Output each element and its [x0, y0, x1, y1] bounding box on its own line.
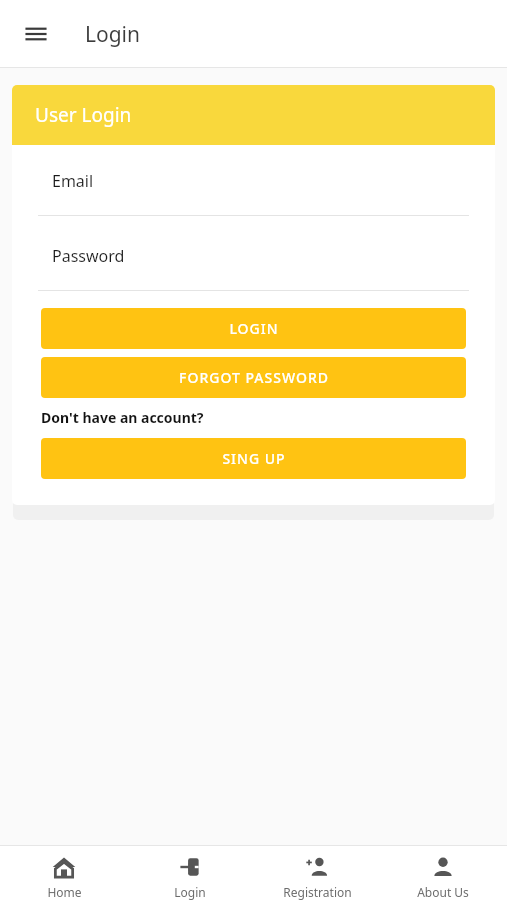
- button[interactable]: Password: [38, 245, 469, 291]
- button[interactable]: Open navigation menu: [16, 14, 56, 54]
- staticText: SING UP: [222, 449, 286, 468]
- button[interactable]: SING UP: [41, 438, 466, 479]
- button[interactable]: About Us: [380, 846, 506, 900]
- staticText: Login: [174, 884, 206, 900]
- staticText: User Login: [35, 102, 132, 128]
- staticText: Don't have an account?: [41, 408, 204, 427]
- staticText: Home: [47, 884, 82, 900]
- button[interactable]: FORGOT PASSWORD: [41, 357, 466, 398]
- button[interactable]: Email: [38, 170, 469, 216]
- button[interactable]: Home: [1, 846, 127, 900]
- staticText: Login: [85, 20, 141, 49]
- button[interactable]: Login: [127, 846, 253, 900]
- staticText: LOGIN: [229, 319, 279, 338]
- button[interactable]: LOGIN: [41, 308, 466, 349]
- staticText: Password: [52, 245, 125, 267]
- button[interactable]: Registration: [254, 846, 380, 900]
- staticText: About Us: [417, 884, 469, 900]
- staticText: Email: [52, 170, 94, 192]
- staticText: FORGOT PASSWORD: [179, 368, 329, 387]
- staticText: Registration: [283, 884, 352, 900]
